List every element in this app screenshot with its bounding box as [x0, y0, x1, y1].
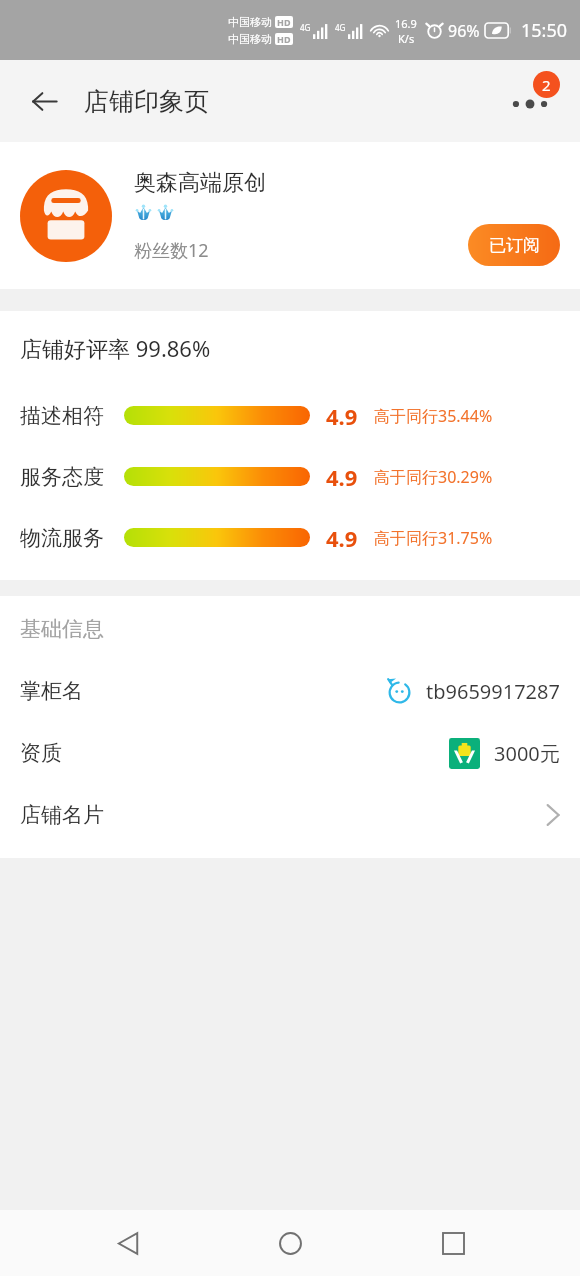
staticText: 店铺印象页 [84, 86, 209, 117]
staticText: tb9659917287 [426, 678, 560, 705]
staticText: HD [277, 16, 291, 28]
staticText: 物流服务 [20, 525, 104, 551]
staticText: 4G [335, 22, 346, 33]
staticText: 掌柜名 [20, 678, 83, 704]
button[interactable]: 描述相符 [20, 385, 562, 446]
staticText: 4.9 [326, 523, 358, 553]
staticText: 描述相符 [20, 403, 104, 429]
button[interactable]: Back [22, 79, 66, 123]
staticText: 2 [542, 75, 551, 95]
staticText: 4.9 [326, 401, 358, 431]
staticText: 中国移动 [228, 32, 272, 46]
staticText: 96% [448, 20, 480, 42]
staticText: 中国移动 [228, 15, 272, 29]
button[interactable]: 奥森高端原创 [0, 142, 580, 289]
staticText: K/s [398, 31, 415, 46]
staticText: 店铺名片 [20, 802, 104, 828]
button[interactable]: 资质 [20, 722, 560, 784]
button[interactable]: 服务态度 [20, 446, 562, 507]
staticText: 4G [300, 22, 311, 33]
button[interactable]: Home [255, 1210, 325, 1276]
staticText: 3000元 [494, 740, 560, 767]
staticText: 服务态度 [20, 464, 104, 490]
staticText: 粉丝数12 [134, 238, 209, 263]
button[interactable]: 店铺名片 [20, 784, 560, 846]
staticText: 基础信息 [20, 616, 104, 642]
button[interactable]: More options, 2 notifications [504, 75, 556, 127]
button[interactable]: Recent apps [418, 1210, 488, 1276]
button[interactable]: Back [93, 1210, 163, 1276]
staticText: 高于同行35.44% [374, 405, 493, 427]
staticText: 4.9 [326, 462, 358, 492]
button[interactable]: 掌柜名 [20, 660, 560, 722]
staticText: 店铺好评率 99.86% [20, 333, 211, 363]
staticText: 资质 [20, 740, 62, 766]
staticText: HD [277, 33, 291, 45]
staticText: 已订阅 [489, 235, 540, 256]
staticText: 奥森高端原创 [134, 169, 266, 197]
button[interactable]: 已订阅 [468, 224, 560, 266]
button[interactable]: 物流服务 [20, 507, 562, 568]
staticText: 15:50 [521, 18, 568, 43]
staticText: 16.9 [395, 16, 417, 31]
staticText: 高于同行30.29% [374, 466, 493, 488]
staticText: 高于同行31.75% [374, 527, 493, 549]
